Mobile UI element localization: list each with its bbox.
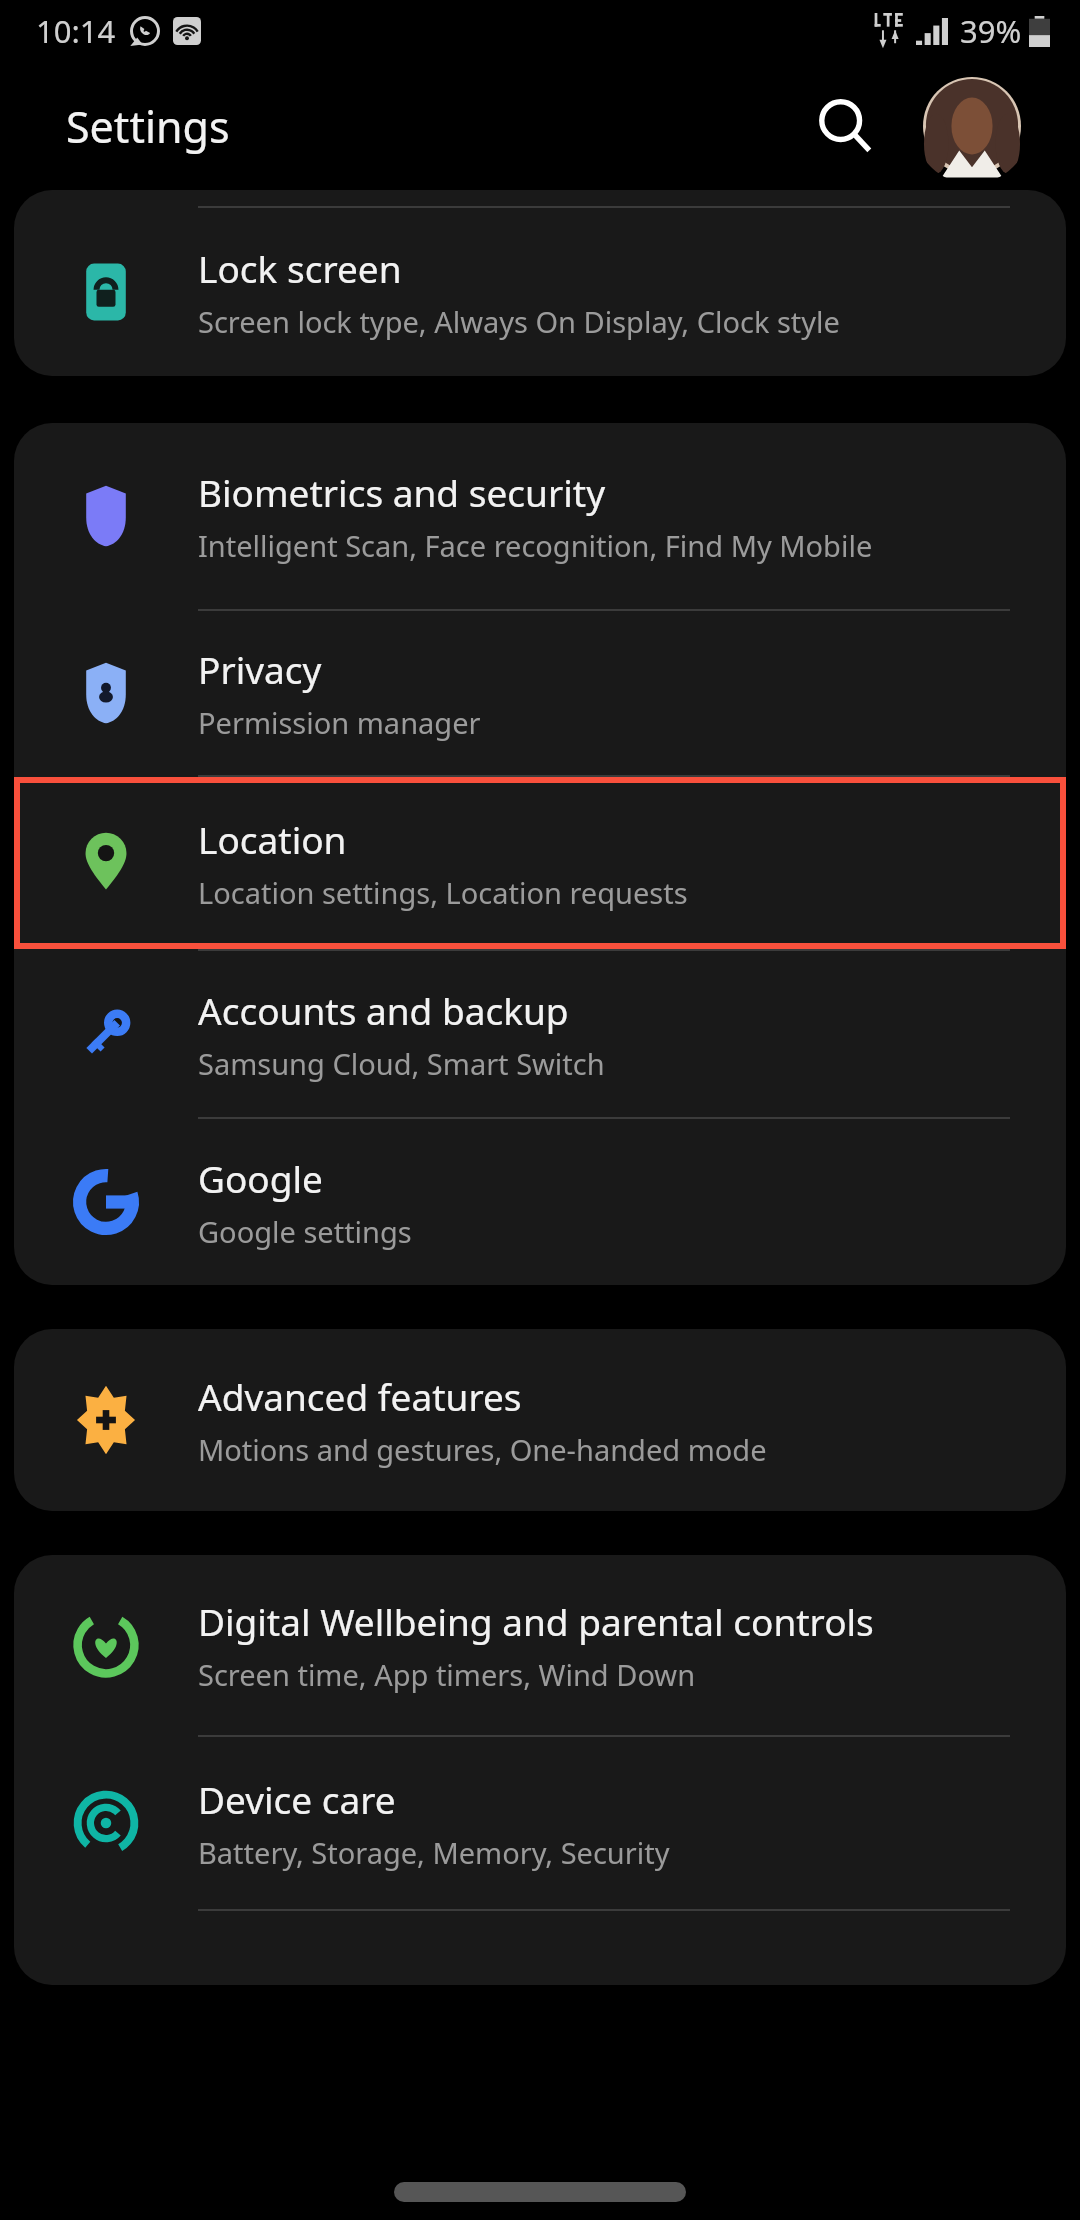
button[interactable]: Google — [14, 1119, 1066, 1285]
button[interactable]: Location — [14, 777, 1066, 949]
staticText: Device care — [198, 1774, 396, 1824]
button[interactable]: Privacy — [14, 611, 1066, 775]
staticText: Digital Wellbeing and parental controls — [198, 1596, 874, 1646]
staticText: Intelligent Scan, Face recognition, Find… — [198, 526, 873, 565]
staticText: 39% — [960, 10, 1022, 52]
button[interactable]: Digital Wellbeing and parental controls — [14, 1555, 1066, 1735]
staticText: Advanced features — [198, 1371, 522, 1421]
button[interactable]: Advanced features — [14, 1329, 1066, 1511]
button[interactable]: Lock screen — [14, 208, 1066, 376]
staticText: Battery, Storage, Memory, Security — [198, 1833, 670, 1872]
button[interactable]: Accounts and backup — [14, 951, 1066, 1117]
staticText: Settings — [66, 97, 230, 156]
button[interactable]: Search — [798, 79, 892, 173]
button[interactable]: Biometrics and security — [14, 423, 1066, 609]
staticText: Motions and gestures, One-handed mode — [198, 1430, 767, 1469]
staticText: Privacy — [198, 644, 322, 694]
staticText: Google — [198, 1153, 323, 1203]
button[interactable]: Device care — [14, 1737, 1066, 1909]
staticText: Biometrics and security — [198, 467, 605, 517]
staticText: Location settings, Location requests — [198, 873, 688, 912]
staticText: Location — [198, 814, 347, 864]
staticText: Permission manager — [198, 703, 481, 742]
staticText: Screen time, App timers, Wind Down — [198, 1655, 696, 1694]
staticText: 10:14 — [36, 10, 116, 52]
staticText: Samsung Cloud, Smart Switch — [198, 1044, 605, 1083]
staticText: Accounts and backup — [198, 985, 569, 1035]
staticText: Google settings — [198, 1212, 412, 1251]
staticText: Screen lock type, Always On Display, Clo… — [198, 302, 840, 341]
button[interactable]: Profile — [914, 68, 1030, 184]
staticText: Lock screen — [198, 243, 402, 293]
